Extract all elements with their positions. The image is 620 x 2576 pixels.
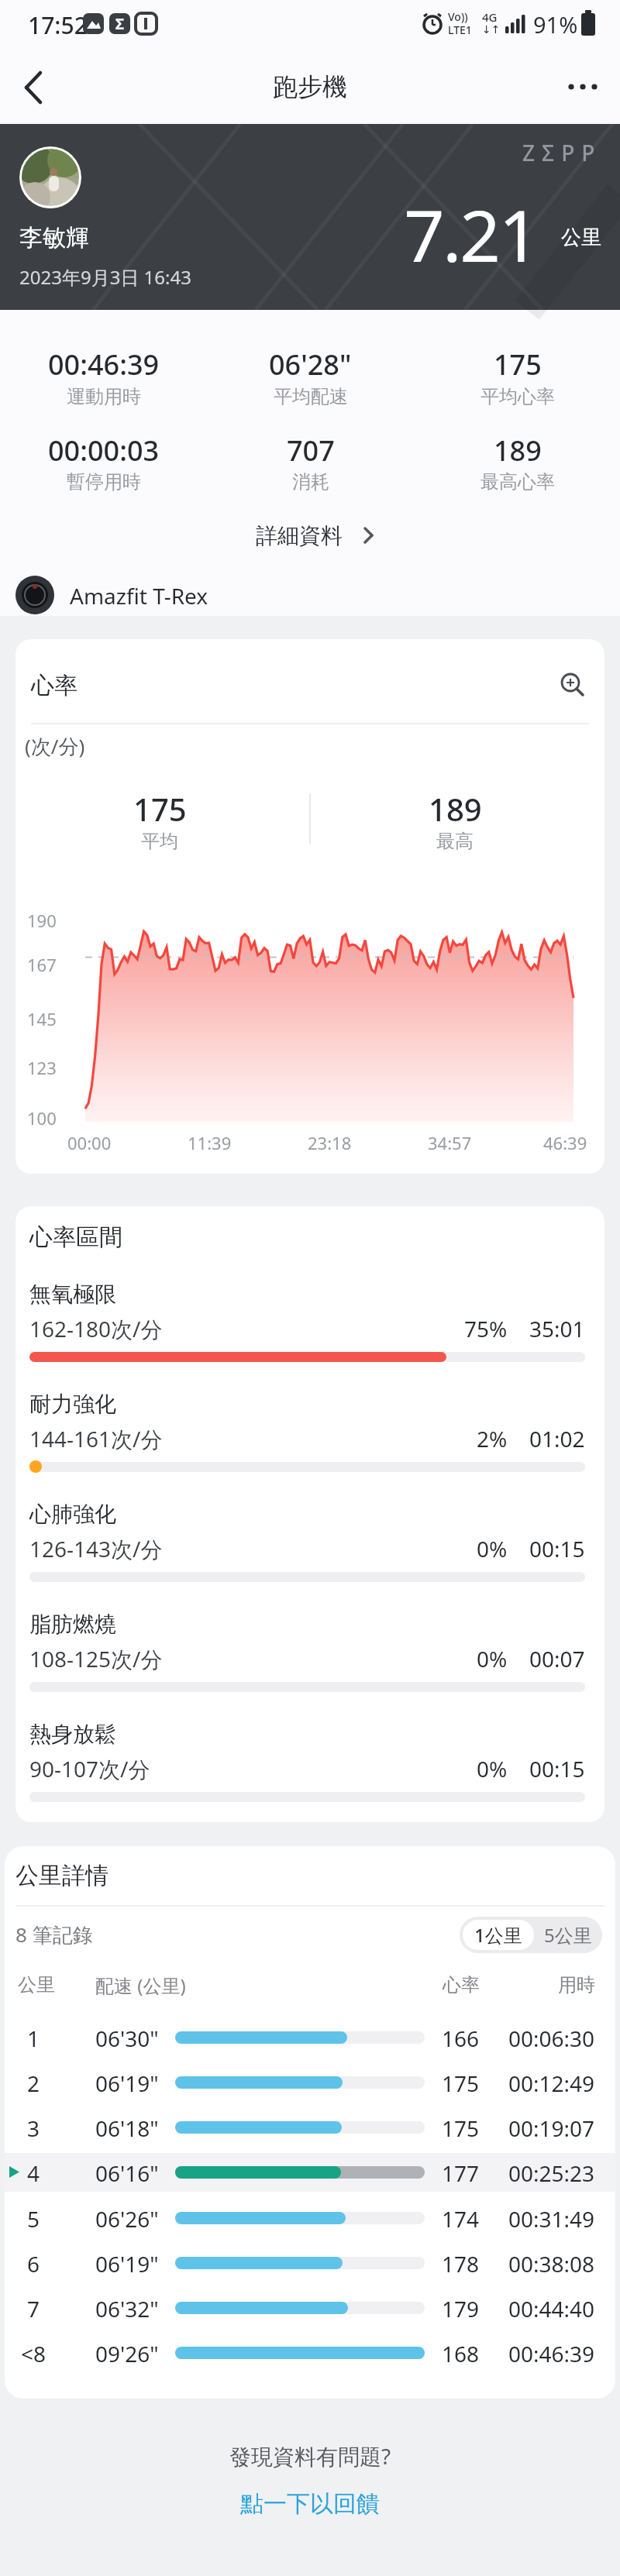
staticText: 心率區間 — [29, 1223, 122, 1252]
staticText: 91% — [533, 9, 577, 37]
staticText: 175 — [442, 2113, 480, 2141]
staticText: 123 — [27, 1056, 57, 1079]
staticText: 1公里 — [474, 1922, 522, 1948]
staticText: 126-143次/分 — [29, 1534, 163, 1562]
staticText: 00:38:08 — [508, 2249, 595, 2277]
staticText: 00:46:39 — [508, 2339, 595, 2367]
staticText: 00:12:49 — [508, 2069, 595, 2096]
staticText: 配速 (公里) — [95, 1972, 186, 1998]
staticText: 最高心率 — [480, 470, 555, 494]
button[interactable]: 5公里 — [534, 1917, 602, 1953]
staticText: <8 — [21, 2339, 46, 2367]
button[interactable] — [5, 2060, 615, 2105]
staticText: 00:25:23 — [508, 2158, 595, 2186]
staticText: 4G — [482, 9, 498, 23]
staticText: 暫停用時 — [67, 470, 141, 494]
button[interactable] — [560, 70, 606, 104]
staticText: 178 — [442, 2249, 480, 2277]
staticText: 06'30" — [95, 2024, 159, 2052]
staticText: 167 — [27, 953, 57, 976]
staticText: 平均心率 — [480, 385, 555, 408]
staticText: 公里 — [561, 225, 601, 250]
staticText: 平均配速 — [274, 385, 348, 408]
button[interactable] — [5, 2285, 615, 2330]
staticText: 108-125次/分 — [29, 1644, 163, 1672]
staticText: ZΣPP — [522, 138, 602, 166]
staticText: 189 — [494, 432, 542, 467]
staticText: 179 — [442, 2294, 480, 2322]
staticText: 0% — [477, 1754, 508, 1782]
staticText: 2 — [27, 2069, 40, 2096]
staticText: 00:19:07 — [508, 2113, 595, 2141]
staticText: 平均 — [141, 830, 178, 853]
staticText: 175 — [442, 2069, 480, 2096]
staticText: 11:39 — [188, 1131, 232, 1154]
staticText: 06'32" — [95, 2294, 159, 2322]
staticText: 點一下以回饋 — [240, 2489, 380, 2519]
staticText: 脂肪燃燒 — [29, 1611, 116, 1638]
staticText: Σ — [115, 14, 125, 34]
staticText: 06'19" — [95, 2249, 159, 2277]
button[interactable] — [5, 2015, 615, 2060]
staticText: 175 — [494, 346, 542, 381]
staticText: 6 — [27, 2249, 40, 2277]
staticText: LTE1 — [448, 22, 472, 36]
staticText: 175 — [133, 788, 187, 827]
button[interactable] — [5, 2150, 615, 2195]
staticText: 06'16" — [95, 2158, 159, 2186]
staticText: 75% — [464, 1314, 508, 1342]
staticText: 2% — [477, 1424, 508, 1452]
staticText: 耐力強化 — [29, 1391, 116, 1418]
button[interactable] — [553, 665, 592, 704]
staticText: 熱身放鬆 — [29, 1721, 116, 1748]
button[interactable] — [5, 2105, 615, 2150]
staticText: 8 筆記錄 — [15, 1921, 93, 1948]
staticText: 06'28" — [269, 346, 352, 381]
staticText: Amazfit T-Rex — [70, 581, 208, 610]
button[interactable] — [5, 2196, 615, 2241]
staticText: 5 — [27, 2204, 40, 2232]
staticText: 5公里 — [544, 1922, 592, 1948]
staticText: 144-161次/分 — [29, 1424, 163, 1452]
staticText: 177 — [442, 2158, 480, 2186]
staticText: 公里詳情 — [15, 1861, 108, 1890]
staticText: 心率 — [443, 1973, 480, 1996]
staticText: 7 — [27, 2294, 40, 2322]
staticText: 消耗 — [292, 470, 329, 494]
staticText: 00:31:49 — [508, 2204, 595, 2232]
staticText: 心肺強化 — [29, 1501, 116, 1528]
staticText: 00:06:30 — [508, 2024, 595, 2052]
staticText: 34:57 — [428, 1131, 472, 1154]
staticText: 06'26" — [95, 2204, 159, 2232]
staticText: (次/分) — [25, 732, 85, 760]
staticText: 無氧極限 — [29, 1281, 116, 1308]
staticText: 145 — [27, 1007, 57, 1030]
staticText: 46:39 — [543, 1131, 587, 1154]
staticText: 100 — [27, 1106, 57, 1130]
staticText: 00:46:39 — [48, 346, 160, 381]
staticText: 3 — [27, 2113, 40, 2141]
staticText: 詳細資料 — [256, 522, 343, 549]
button[interactable] — [12, 67, 56, 108]
button[interactable] — [0, 570, 310, 617]
staticText: 4 — [27, 2158, 40, 2186]
staticText: 162-180次/分 — [29, 1314, 163, 1342]
button[interactable] — [5, 2330, 615, 2375]
button[interactable]: 點一下以回饋 — [217, 2485, 403, 2523]
staticText: 00:00 — [67, 1131, 112, 1154]
staticText: 23:18 — [308, 1131, 352, 1154]
button[interactable]: 1公里 — [463, 1920, 534, 1950]
staticText: 1 — [27, 2024, 40, 2052]
button[interactable] — [5, 2241, 615, 2285]
staticText: 公里 — [18, 1973, 55, 1996]
staticText: 168 — [442, 2339, 480, 2367]
staticText: 190 — [27, 909, 57, 932]
staticText: 0% — [477, 1534, 508, 1562]
staticText: 0% — [477, 1644, 508, 1672]
button[interactable]: 詳細資料 — [232, 518, 387, 552]
staticText: 17:52 — [28, 9, 88, 37]
staticText: 7.21 — [404, 186, 538, 271]
staticText: 李敏輝 — [19, 223, 89, 251]
staticText: 00:00:03 — [48, 432, 160, 467]
staticText: 90-107次/分 — [29, 1754, 150, 1782]
